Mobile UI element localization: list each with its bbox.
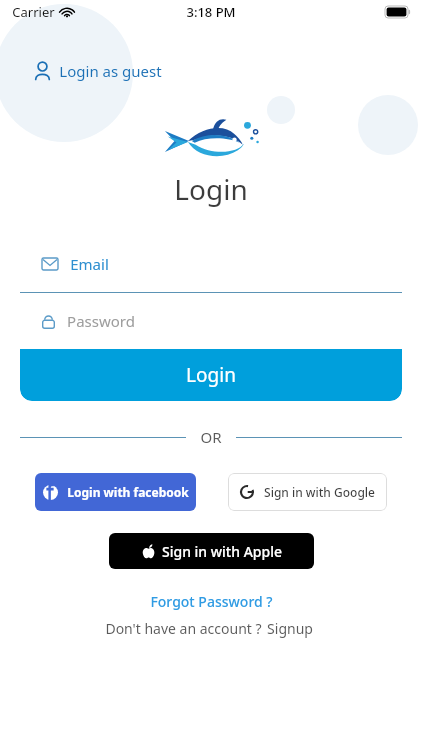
button[interactable]: Login [20, 349, 402, 401]
button[interactable]: Sign in with Apple [109, 533, 314, 569]
button[interactable]: Forgot Password ? [144, 589, 279, 614]
staticText: Email [70, 254, 109, 274]
staticText: Login as guest [59, 61, 162, 81]
staticText: Forgot Password ? [150, 592, 273, 611]
button[interactable]: Sign in with Google [228, 473, 387, 511]
staticText: Login [186, 362, 236, 388]
staticText: Password [67, 311, 135, 331]
staticText: Login [174, 170, 248, 208]
staticText: 3:18 PM [186, 3, 236, 21]
staticText: Signup [267, 619, 313, 638]
staticText: Don't have an account ? [105, 619, 262, 638]
staticText: Sign in with Apple [162, 542, 282, 561]
staticText: Sign in with Google [264, 484, 375, 500]
button[interactable]: Login with facebook [35, 473, 196, 511]
button[interactable]: Signup [262, 617, 318, 640]
button[interactable]: Email [20, 236, 402, 292]
button[interactable]: Password [20, 293, 402, 349]
staticText: Carrier [12, 3, 55, 21]
staticText: Login with facebook [67, 484, 189, 500]
button[interactable]: Login as guest [30, 58, 166, 84]
staticText: OR [200, 427, 222, 447]
